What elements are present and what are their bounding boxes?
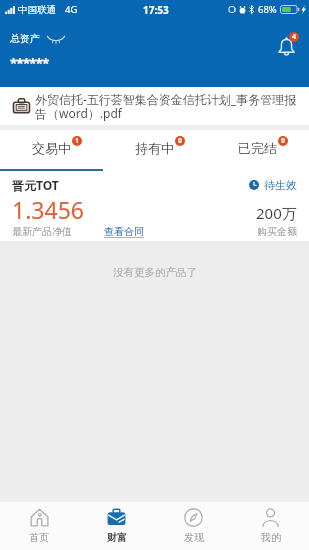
- staticText: ******: [10, 54, 49, 72]
- staticText: 我的: [261, 531, 281, 544]
- staticText: 17:53: [143, 3, 169, 17]
- staticText: 总资产: [10, 32, 40, 45]
- button[interactable]: 发现: [155, 502, 232, 550]
- button[interactable]: Hide amount: [47, 34, 65, 44]
- button[interactable]: 查看合同: [104, 225, 144, 238]
- staticText: 200万: [256, 203, 297, 223]
- staticText: 已完结: [238, 140, 277, 156]
- staticText: 晋元TOT: [12, 177, 59, 193]
- staticText: 1.3456: [12, 194, 84, 225]
- button[interactable]: 晋元TOT: [0, 171, 309, 241]
- staticText: 外贸信托-五行荟智集合资金信托计划_事务管理报告（word）.pdf: [35, 91, 301, 122]
- staticText: 首页: [29, 531, 49, 544]
- staticText: 发现: [184, 531, 204, 544]
- staticText: 没有更多的产品了: [113, 266, 197, 279]
- staticText: 购买金额: [257, 225, 297, 238]
- staticText: 4G: [65, 3, 78, 16]
- staticText: 68%: [258, 3, 277, 16]
- button[interactable]: 交易中: [0, 130, 103, 165]
- staticText: 待生效: [264, 178, 297, 192]
- staticText: 交易中: [32, 140, 71, 156]
- staticText: 财富: [107, 531, 127, 544]
- button[interactable]: 我的: [232, 502, 309, 550]
- button[interactable]: 财富: [78, 502, 155, 550]
- staticText: 持有中: [135, 140, 174, 156]
- staticText: 0: [178, 136, 183, 146]
- button[interactable]: 首页: [0, 502, 78, 550]
- button[interactable]: 外贸信托-五行荟智集合资金信托计划_事务管理报告（word）.pdf: [0, 87, 309, 125]
- staticText: 0: [281, 136, 286, 146]
- button[interactable]: Notifications: [274, 30, 300, 56]
- button[interactable]: 持有中: [103, 130, 206, 165]
- staticText: 最新产品净值: [12, 225, 72, 238]
- staticText: 1: [75, 136, 80, 146]
- staticText: 中国联通: [18, 4, 56, 16]
- staticText: 4: [292, 32, 297, 42]
- button[interactable]: 已完结: [206, 130, 309, 165]
